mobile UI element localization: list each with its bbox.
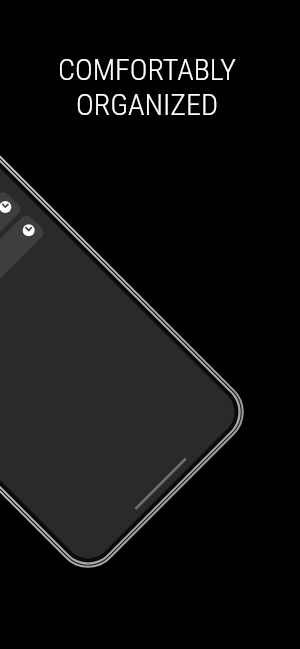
button[interactable]: Reminder item [0,189,23,347]
staticText: COMFORTABLY [58,52,236,87]
staticText: ORGANIZED [76,87,218,122]
button[interactable]: Reminder item [0,213,46,370]
